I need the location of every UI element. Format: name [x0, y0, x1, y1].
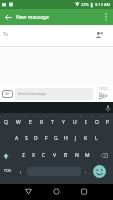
staticText: ?123	[4, 169, 11, 173]
staticText: A	[15, 135, 19, 142]
button[interactable]	[98, 91, 108, 100]
staticText: I	[85, 119, 87, 126]
staticText: O	[95, 119, 99, 126]
staticText: X	[32, 152, 35, 159]
button[interactable]	[0, 184, 37, 200]
staticText: 9	[91, 114, 93, 117]
button[interactable]: GIF	[2, 90, 13, 98]
button[interactable]: F	[41, 130, 51, 147]
staticText: W	[16, 119, 21, 126]
button[interactable]: J	[71, 130, 81, 147]
staticText: Q	[4, 119, 8, 126]
button[interactable]	[0, 147, 18, 164]
button[interactable]: B	[60, 147, 71, 164]
staticText: 2	[12, 114, 14, 117]
staticText: N	[75, 152, 79, 159]
staticText: To	[3, 31, 8, 37]
button[interactable]	[94, 30, 103, 39]
button[interactable]: ,	[15, 164, 26, 178]
staticText: M	[85, 152, 90, 159]
button[interactable]	[102, 13, 110, 21]
button[interactable]: Z	[18, 147, 28, 164]
staticText: 141/2	[99, 87, 107, 91]
button[interactable]: 3	[24, 114, 36, 130]
button[interactable]	[93, 147, 113, 164]
staticText: .	[85, 168, 87, 175]
staticText: 0	[102, 114, 104, 117]
staticText: GIF	[5, 92, 10, 96]
staticText: ,	[20, 168, 22, 175]
staticText: 22%	[81, 2, 89, 7]
button[interactable]: 9	[91, 114, 102, 130]
staticText: F	[45, 135, 48, 142]
staticText: J	[75, 135, 77, 142]
button[interactable]: X	[28, 147, 38, 164]
staticText: G	[54, 135, 58, 142]
staticText: Z	[22, 152, 25, 159]
staticText: U	[73, 119, 77, 126]
staticText: H	[64, 135, 68, 142]
staticText: Send message	[18, 91, 47, 97]
staticText: S	[25, 135, 28, 142]
staticText: 9:13 AM	[95, 2, 111, 7]
staticText: L	[95, 135, 98, 142]
staticText: K	[84, 135, 88, 142]
staticText: 3	[24, 114, 26, 117]
staticText: R	[40, 119, 44, 126]
button[interactable]: K	[81, 130, 91, 147]
button[interactable]: M	[82, 147, 93, 164]
staticText: P	[106, 119, 110, 126]
button[interactable]: N	[71, 147, 82, 164]
button[interactable]	[37, 184, 75, 200]
staticText: D	[34, 135, 38, 142]
staticText: T	[51, 119, 54, 126]
staticText: V	[53, 152, 57, 159]
button[interactable]: Send message	[15, 88, 93, 100]
button[interactable]: H	[61, 130, 71, 147]
button[interactable]: 2	[12, 114, 24, 130]
button[interactable]: S	[21, 130, 31, 147]
button[interactable]: A	[12, 130, 21, 147]
staticText: E	[29, 119, 32, 126]
staticText: 4	[36, 114, 38, 117]
button[interactable]: .	[82, 164, 89, 178]
button[interactable]	[75, 184, 113, 200]
staticText: 6	[58, 114, 60, 117]
button[interactable]	[3, 12, 13, 22]
button[interactable]: 4	[36, 114, 47, 130]
staticText: 7	[69, 114, 71, 117]
button[interactable]: 1	[0, 114, 12, 130]
button[interactable]: G	[51, 130, 61, 147]
staticText: 1	[0, 114, 2, 117]
button[interactable]: V	[49, 147, 60, 164]
button[interactable]: 5	[47, 114, 58, 130]
button[interactable]: C	[38, 147, 49, 164]
button[interactable]	[89, 164, 113, 178]
button[interactable]	[103, 103, 113, 113]
button[interactable]: D	[31, 130, 41, 147]
button[interactable]: 8	[80, 114, 91, 130]
staticText: B	[64, 152, 68, 159]
staticText: Y	[62, 119, 65, 126]
staticText: 8	[80, 114, 82, 117]
staticText: 5	[47, 114, 49, 117]
staticText: C	[42, 152, 46, 159]
button[interactable]: 7	[69, 114, 80, 130]
button[interactable]: 0	[102, 114, 113, 130]
button[interactable]: 6	[58, 114, 69, 130]
staticText: New message	[16, 14, 49, 21]
button[interactable]: L	[91, 130, 101, 147]
button[interactable]: ?123	[0, 164, 15, 178]
